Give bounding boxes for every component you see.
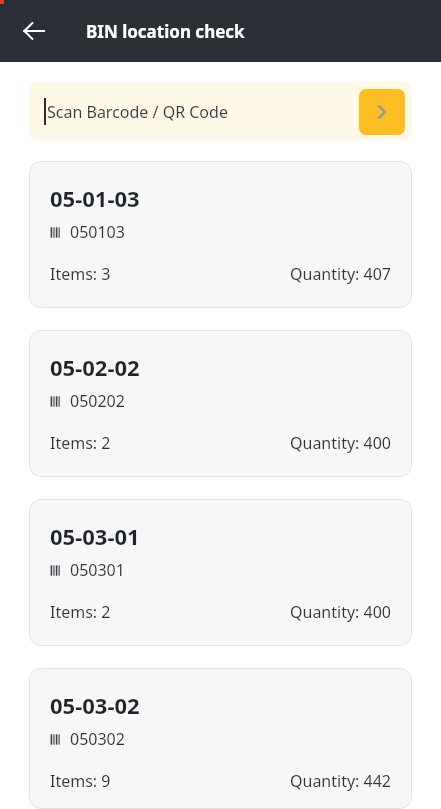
staticText: 050103 xyxy=(70,221,125,243)
staticText: Items: 9 xyxy=(50,770,111,792)
button[interactable]: Back xyxy=(14,11,54,51)
staticText: Scan Barcode / QR Code xyxy=(47,101,228,123)
staticText: Items: 2 xyxy=(50,432,111,454)
staticText: 050301 xyxy=(70,559,125,581)
staticText: Items: 2 xyxy=(50,601,111,623)
staticText: Quantity: 400 xyxy=(290,432,391,454)
staticText: Quantity: 442 xyxy=(290,770,391,792)
staticText: Items: 3 xyxy=(50,263,111,285)
button[interactable]: 05-01-03 xyxy=(29,161,412,308)
staticText: 05-01-03 xyxy=(50,183,140,213)
staticText: Quantity: 407 xyxy=(290,263,391,285)
staticText: 050202 xyxy=(70,390,125,412)
button[interactable]: Scan Barcode / QR Code xyxy=(29,82,412,141)
staticText: 050302 xyxy=(70,728,125,750)
staticText: 05-02-02 xyxy=(50,352,140,382)
button[interactable]: 05-03-01 xyxy=(29,499,412,646)
staticText: BIN location check xyxy=(86,20,245,43)
button[interactable]: Submit scan xyxy=(359,89,405,135)
button[interactable]: 05-03-02 xyxy=(29,668,412,809)
button[interactable]: 05-02-02 xyxy=(29,330,412,477)
staticText: Quantity: 400 xyxy=(290,601,391,623)
staticText: 05-03-01 xyxy=(50,521,140,551)
staticText: 05-03-02 xyxy=(50,690,140,720)
